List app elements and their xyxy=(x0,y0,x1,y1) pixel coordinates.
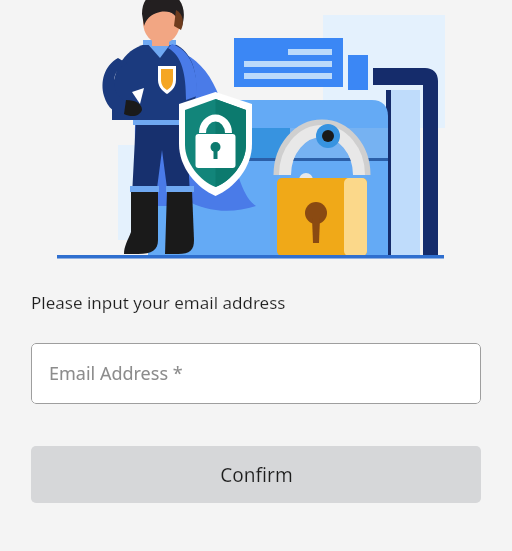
staticText: Confirm xyxy=(220,462,293,488)
button[interactable]: Email Address * xyxy=(31,343,481,404)
staticText: Email Address * xyxy=(49,361,183,386)
button[interactable]: Confirm xyxy=(31,446,481,503)
staticText: Please input your email address xyxy=(31,291,286,314)
